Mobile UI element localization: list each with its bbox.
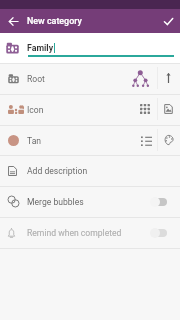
button[interactable]: Toggle (149, 191, 173, 213)
button[interactable]: Icon (0, 94, 180, 125)
staticText: Add description (27, 166, 88, 176)
staticText: Icon (27, 105, 44, 115)
staticText: New category (27, 16, 82, 26)
button[interactable]: Save (157, 10, 179, 32)
button[interactable]: Merge bubbles (0, 186, 180, 217)
button[interactable]: Pick image (157, 98, 179, 120)
staticText: Family (27, 43, 54, 53)
button[interactable]: Colour picker (158, 129, 180, 151)
staticText: Merge bubbles (27, 197, 84, 207)
button[interactable]: Choose icon (134, 98, 156, 120)
staticText: Remind when completed (27, 228, 122, 238)
button[interactable]: Colour list (135, 129, 157, 151)
button[interactable]: Choose parent category (130, 67, 152, 89)
button[interactable]: Root (0, 63, 180, 94)
button[interactable]: Back (2, 10, 24, 32)
staticText: Tan (27, 136, 42, 146)
staticText: Root (27, 74, 45, 84)
button[interactable]: Remind when completed (0, 217, 180, 248)
button[interactable]: Toggle (149, 222, 173, 244)
button[interactable]: Move up (157, 67, 179, 89)
button[interactable]: Tan (0, 125, 180, 156)
button[interactable]: Add description (0, 155, 180, 186)
button[interactable]: Family (0, 33, 180, 63)
